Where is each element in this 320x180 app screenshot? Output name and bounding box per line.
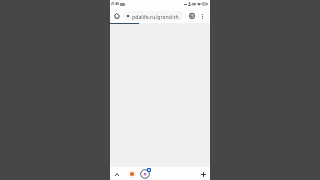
button[interactable]: Reader mode [186, 10, 197, 21]
button[interactable]: Profile [139, 167, 151, 180]
staticText: 21:48 [111, 2, 120, 6]
staticText: pdalife.ru/grand-th [132, 13, 179, 20]
button[interactable]: pdalife.ru/grand-th [123, 11, 183, 21]
button[interactable]: Browser home [126, 168, 138, 180]
button[interactable]: New tab [198, 169, 208, 179]
button[interactable]: Home [112, 11, 122, 21]
button[interactable]: More options [197, 11, 207, 21]
button[interactable]: Expand toolbar [112, 169, 122, 179]
